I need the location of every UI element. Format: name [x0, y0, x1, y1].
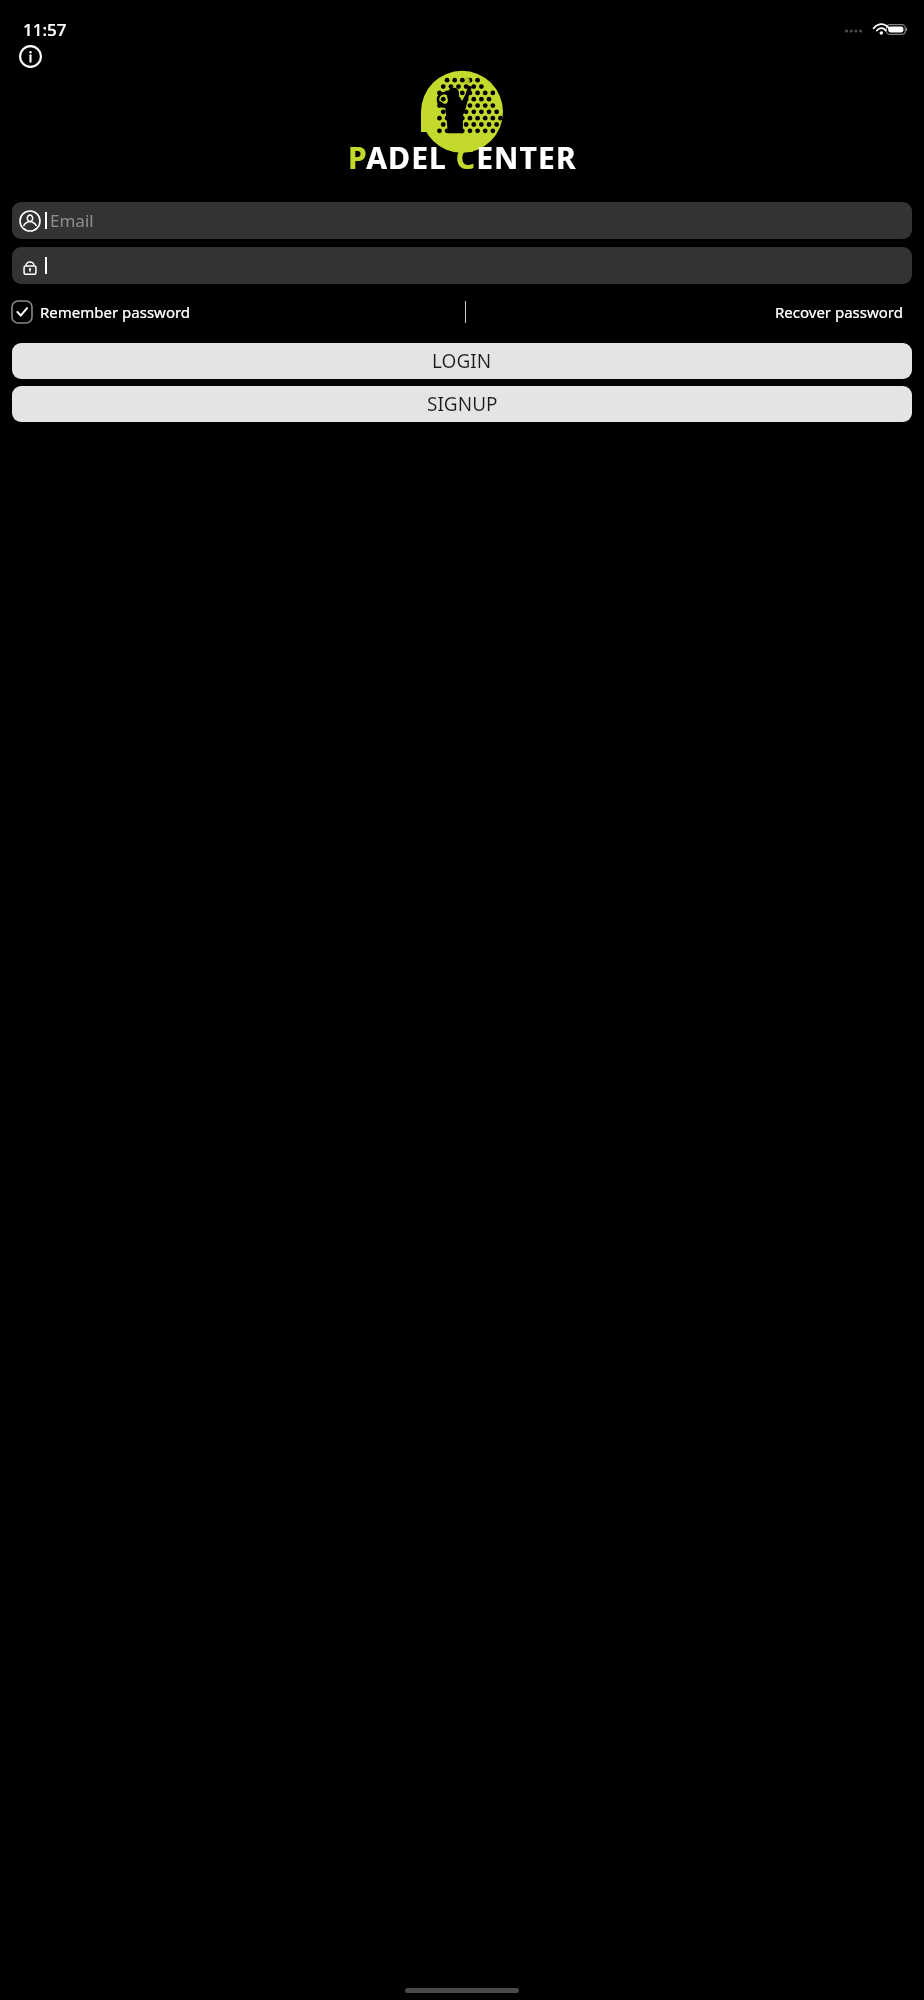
button[interactable]: SIGNUP — [12, 386, 912, 422]
button[interactable]: Email field — [12, 202, 912, 239]
button[interactable]: Recover password — [773, 298, 905, 326]
staticText: Remember password — [40, 302, 191, 322]
staticText: Email — [50, 209, 94, 232]
button[interactable]: Password field — [12, 247, 912, 284]
staticText: PADEL CENTER — [348, 137, 577, 178]
staticText: 11:57 — [23, 18, 67, 41]
button[interactable]: LOGIN — [12, 343, 912, 379]
staticText: SIGNUP — [427, 391, 498, 417]
staticText: LOGIN — [432, 348, 492, 374]
button[interactable]: Remember password — [12, 301, 191, 323]
staticText: Recover password — [775, 302, 903, 322]
button[interactable]: Information — [7, 33, 53, 79]
